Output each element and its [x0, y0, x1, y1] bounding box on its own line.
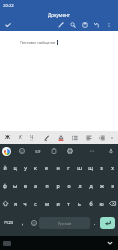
button[interactable]: ь [74, 194, 85, 212]
staticText: м [45, 200, 49, 207]
button[interactable]: ж [96, 176, 107, 194]
staticText: х [111, 164, 114, 171]
staticText: т [67, 200, 70, 207]
button[interactable]: Indent [96, 131, 108, 144]
button[interactable]: ы [10, 176, 20, 194]
staticText: й [3, 164, 7, 171]
button[interactable]: Format [55, 18, 67, 31]
staticText: д [89, 182, 93, 189]
button[interactable]: . [90, 212, 100, 234]
button[interactable]: и [52, 194, 63, 212]
staticText: н [56, 164, 60, 171]
button[interactable]: Highlight [41, 131, 53, 144]
button[interactable]: ч [20, 194, 30, 212]
button[interactable]: к [30, 158, 41, 176]
button[interactable]: Italic [14, 131, 26, 144]
button[interactable]: Undo [91, 18, 103, 31]
staticText: с [34, 200, 37, 207]
button[interactable]: Save [79, 18, 91, 31]
staticText: К [19, 134, 22, 141]
button[interactable]: Underline [26, 131, 38, 144]
button[interactable]: р [52, 176, 63, 194]
button[interactable]: в [20, 176, 30, 194]
staticText: . [94, 220, 96, 227]
button[interactable]: б [85, 194, 96, 212]
button[interactable]: х [107, 158, 118, 176]
button[interactable]: Hide keyboard [104, 237, 116, 249]
button[interactable]: н [52, 158, 63, 176]
button[interactable]: о [63, 176, 74, 194]
button[interactable]: Shift [0, 194, 10, 212]
button[interactable]: Emoji [17, 146, 27, 156]
staticText: ю [99, 200, 104, 207]
staticText: ф [3, 182, 7, 189]
staticText: з [100, 164, 103, 171]
staticText: Ч [30, 134, 34, 141]
button[interactable]: Emoji [28, 212, 39, 234]
button[interactable]: More options [103, 18, 115, 31]
button[interactable]: й [0, 158, 10, 176]
staticText: , [22, 220, 24, 227]
button[interactable]: щ [85, 158, 96, 176]
button[interactable]: Change keyboard [3, 241, 11, 246]
staticText: ч [23, 200, 27, 207]
button[interactable]: Settings [65, 146, 75, 156]
button[interactable]: т [63, 194, 74, 212]
staticText: п [45, 182, 49, 189]
button[interactable]: а [30, 176, 41, 194]
staticText: ц [13, 164, 17, 171]
staticText: е [45, 164, 48, 171]
button[interactable]: д [85, 176, 96, 194]
staticText: Ж [5, 134, 10, 141]
staticText: р [56, 182, 60, 189]
staticText: Русский [58, 221, 71, 226]
button[interactable]: More [106, 131, 118, 144]
staticText: Документ [48, 12, 70, 18]
button[interactable]: ц [10, 158, 20, 176]
button[interactable]: Voice input [106, 146, 116, 156]
button[interactable]: Done [2, 19, 14, 31]
button[interactable]: г [63, 158, 74, 176]
button[interactable]: Symbols [0, 212, 17, 234]
staticText: ш [77, 164, 82, 171]
button[interactable]: Bulleted list [69, 131, 81, 144]
staticText: б [89, 200, 93, 207]
staticText: ы [13, 182, 17, 189]
staticText: ?123 [4, 220, 14, 226]
button[interactable]: Search [67, 18, 79, 31]
button[interactable]: я [10, 194, 20, 212]
button[interactable]: п [41, 176, 52, 194]
staticText: к [34, 164, 37, 171]
staticText: у [24, 164, 27, 171]
staticText: 20:22 [3, 3, 14, 9]
staticText: и [56, 200, 60, 207]
button[interactable]: ш [74, 158, 85, 176]
button[interactable]: Enter [100, 217, 115, 229]
button[interactable]: ф [0, 176, 10, 194]
button[interactable]: е [41, 158, 52, 176]
button[interactable]: Text color [55, 131, 67, 144]
button[interactable]: Google [2, 147, 11, 156]
button[interactable]: Clipboard [49, 146, 59, 156]
button[interactable]: с [30, 194, 41, 212]
staticText: г [67, 164, 70, 171]
button[interactable]: Align [83, 131, 95, 144]
staticText: э [111, 182, 114, 189]
button[interactable]: GIF [33, 146, 43, 156]
button[interactable]: у [20, 158, 30, 176]
button[interactable]: з [96, 158, 107, 176]
staticText: а [34, 182, 37, 189]
button[interactable]: м [41, 194, 52, 212]
button[interactable]: Bold [1, 131, 13, 144]
staticText: GIF [35, 149, 41, 154]
button[interactable]: ю [96, 194, 107, 212]
button[interactable]: , [17, 212, 28, 234]
button[interactable]: Space [39, 217, 90, 229]
button[interactable]: л [74, 176, 85, 194]
staticText: в [24, 182, 27, 189]
staticText: о [67, 182, 71, 189]
staticText: л [78, 182, 82, 189]
button[interactable]: Backspace [107, 194, 118, 212]
button[interactable]: More [87, 146, 97, 156]
button[interactable]: э [107, 176, 118, 194]
